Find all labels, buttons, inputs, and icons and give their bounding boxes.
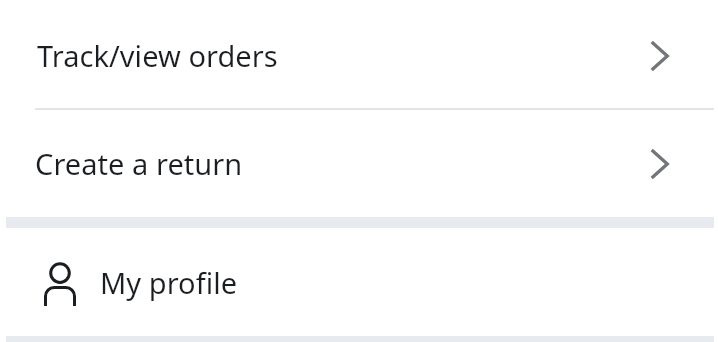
staticText: My profile	[100, 263, 238, 302]
button[interactable]: My profile	[0, 228, 718, 336]
button[interactable]: Track/view orders	[0, 0, 718, 108]
staticText: Create a return	[35, 144, 243, 183]
other: Open Create a return	[649, 148, 669, 180]
other: Open Track/view orders	[649, 40, 669, 72]
button[interactable]: Create a return	[0, 110, 718, 217]
staticText: Track/view orders	[37, 36, 278, 75]
